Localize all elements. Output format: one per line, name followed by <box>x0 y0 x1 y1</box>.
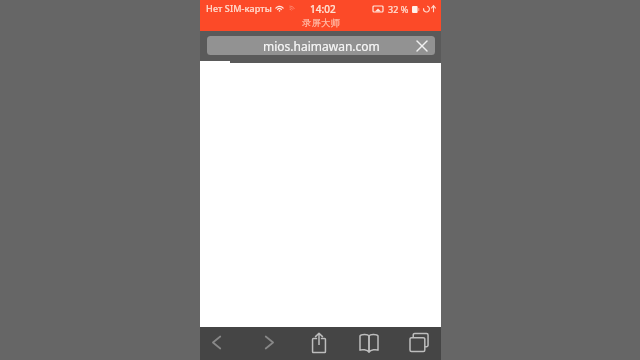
button[interactable]: Bookmarks <box>352 326 386 359</box>
button[interactable]: Forward <box>252 326 286 359</box>
button[interactable]: Stop loading <box>414 38 430 54</box>
button[interactable]: Back <box>199 326 233 359</box>
staticText: Нет SIM-карты <box>206 2 272 14</box>
staticText: 14:02 <box>310 2 336 16</box>
staticText: 32 % <box>388 3 409 15</box>
button[interactable]: Share <box>302 326 336 359</box>
button[interactable]: mios.haimawan.com <box>207 36 435 55</box>
staticText: mios.haimawan.com <box>263 38 380 54</box>
staticText: 录屏大师 <box>302 17 340 29</box>
button[interactable]: Tabs <box>402 326 436 359</box>
